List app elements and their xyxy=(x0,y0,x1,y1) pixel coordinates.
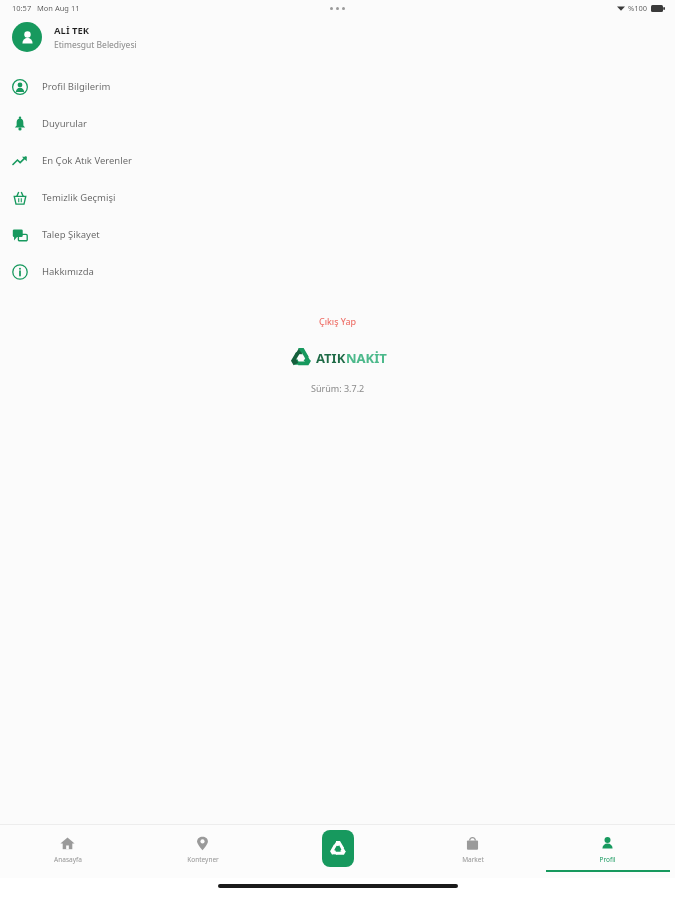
staticText: Konteyner xyxy=(187,855,219,864)
staticText: Profil Bilgilerim xyxy=(42,80,111,93)
staticText: ALİ TEK xyxy=(54,24,90,37)
staticText: %100 xyxy=(628,3,648,13)
staticText: En Çok Atık Verenler xyxy=(42,154,132,167)
button[interactable]: Market xyxy=(405,824,540,878)
button[interactable]: Talep Şikayet xyxy=(0,216,675,253)
staticText: Temizlik Geçmişi xyxy=(42,191,116,204)
staticText: ATIK xyxy=(316,349,346,367)
button[interactable]: Geri Dönüşüm xyxy=(322,830,354,867)
staticText: Sürüm: 3.7.2 xyxy=(311,382,365,394)
staticText: Etimesgut Belediyesi xyxy=(54,39,137,51)
staticText: Profil xyxy=(599,855,616,864)
staticText: NAKİT xyxy=(346,349,387,367)
staticText: 10:57 Mon Aug 11 xyxy=(12,3,80,13)
button[interactable]: Anasayfa xyxy=(0,824,135,878)
button[interactable]: Temizlik Geçmişi xyxy=(0,179,675,216)
button[interactable]: Profil xyxy=(540,824,675,878)
staticText: Çıkış Yap xyxy=(319,315,357,327)
button[interactable]: En Çok Atık Verenler xyxy=(0,142,675,179)
staticText: Talep Şikayet xyxy=(42,228,100,241)
staticText: Anasayfa xyxy=(54,855,82,864)
button[interactable]: Hakkımızda xyxy=(0,253,675,290)
button[interactable]: Çıkış Yap xyxy=(309,312,367,330)
button[interactable]: Profil Bilgilerim xyxy=(0,68,675,105)
button[interactable]: ALİ TEK xyxy=(0,16,675,58)
staticText: Market xyxy=(462,855,484,864)
staticText: Duyurular xyxy=(42,117,88,130)
button[interactable]: Duyurular xyxy=(0,105,675,142)
staticText: Hakkımızda xyxy=(42,265,94,278)
button[interactable]: Konteyner xyxy=(135,824,270,878)
